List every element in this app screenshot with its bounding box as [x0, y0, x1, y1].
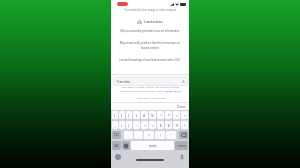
button[interactable]: # [141, 111, 148, 119]
staticText: . [128, 133, 129, 138]
button[interactable]: < [141, 121, 148, 129]
staticText: _ [114, 123, 116, 128]
staticText: ~ [136, 123, 138, 128]
button[interactable]: ] [119, 111, 125, 119]
staticText: ABC [114, 144, 119, 148]
staticText: < [144, 123, 146, 128]
other: Send [182, 80, 185, 83]
staticText: > [152, 123, 154, 128]
button[interactable]: Dictate [179, 154, 185, 160]
button[interactable]: = [181, 111, 188, 119]
staticText: • [184, 123, 186, 128]
staticText: ^ [160, 113, 162, 118]
button[interactable]: Done [177, 104, 186, 109]
staticText: ] [121, 113, 123, 118]
button[interactable]: ' [166, 131, 176, 139]
button[interactable]: , [134, 131, 143, 139]
staticText: | [128, 123, 130, 128]
staticText: space [149, 144, 157, 148]
button[interactable]: ¥ [173, 121, 180, 129]
staticText: Limitations [144, 19, 163, 24]
button[interactable]: • [181, 121, 188, 129]
staticText: \ [121, 123, 123, 128]
staticText: ! [160, 133, 161, 138]
button[interactable]: £ [165, 121, 172, 129]
staticText: } [136, 113, 138, 118]
staticText: { [128, 113, 130, 118]
button[interactable]: * [165, 111, 172, 119]
staticText: Free Research Preview. ChatGPT may produ… [121, 86, 180, 89]
staticText: * [168, 113, 170, 118]
button[interactable]: Translate [113, 77, 188, 86]
staticText: Translate [117, 80, 131, 84]
button[interactable]: { [126, 111, 132, 119]
button[interactable]: ~ [133, 121, 140, 129]
staticText: ' [171, 133, 172, 138]
staticText: May occasionally produce harmful instruc… [116, 41, 184, 50]
staticText: information about people, places, or fac… [120, 90, 181, 93]
staticText: € [160, 123, 162, 128]
staticText: return [178, 144, 186, 148]
button[interactable]: ? [144, 131, 154, 139]
button[interactable]: ABC [112, 141, 121, 150]
staticText: A new question appears here [111, 97, 189, 100]
staticText: + [176, 113, 178, 118]
button[interactable]: ^ [157, 111, 164, 119]
staticText: = [184, 113, 186, 118]
staticText: Limited knowledge of world and events af… [116, 58, 184, 62]
button[interactable]: + [173, 111, 180, 119]
staticText: £ [168, 123, 170, 128]
staticText: % [151, 113, 154, 118]
button[interactable]: 123 [112, 131, 121, 139]
staticText: ? [148, 133, 150, 138]
staticText: # [143, 113, 146, 118]
button[interactable]: > [149, 121, 156, 129]
button[interactable]: _ [112, 121, 118, 129]
button[interactable]: \ [119, 121, 125, 129]
staticText: 123 [114, 133, 119, 137]
button[interactable]: } [133, 111, 140, 119]
button[interactable]: return [175, 141, 188, 150]
button[interactable]: Emoji keyboard [122, 141, 130, 150]
button[interactable]: % [149, 111, 156, 119]
button[interactable]: € [157, 121, 164, 129]
button[interactable]: | [126, 121, 132, 129]
button[interactable]: Backspace [179, 131, 188, 139]
button[interactable]: Change keyboard [115, 154, 121, 160]
staticText: , [138, 133, 139, 138]
staticText: [ [114, 113, 116, 118]
button[interactable]: ! [155, 131, 165, 139]
button[interactable]: [ [112, 111, 118, 119]
staticText: ¥ [176, 123, 178, 128]
button[interactable]: Recording [117, 2, 128, 6]
staticText: May occasionally generate incorrect info… [116, 29, 184, 33]
staticText: Transcribe the first image or enter requ… [111, 8, 189, 12]
button[interactable]: space [131, 141, 174, 150]
button[interactable]: . [124, 131, 133, 139]
